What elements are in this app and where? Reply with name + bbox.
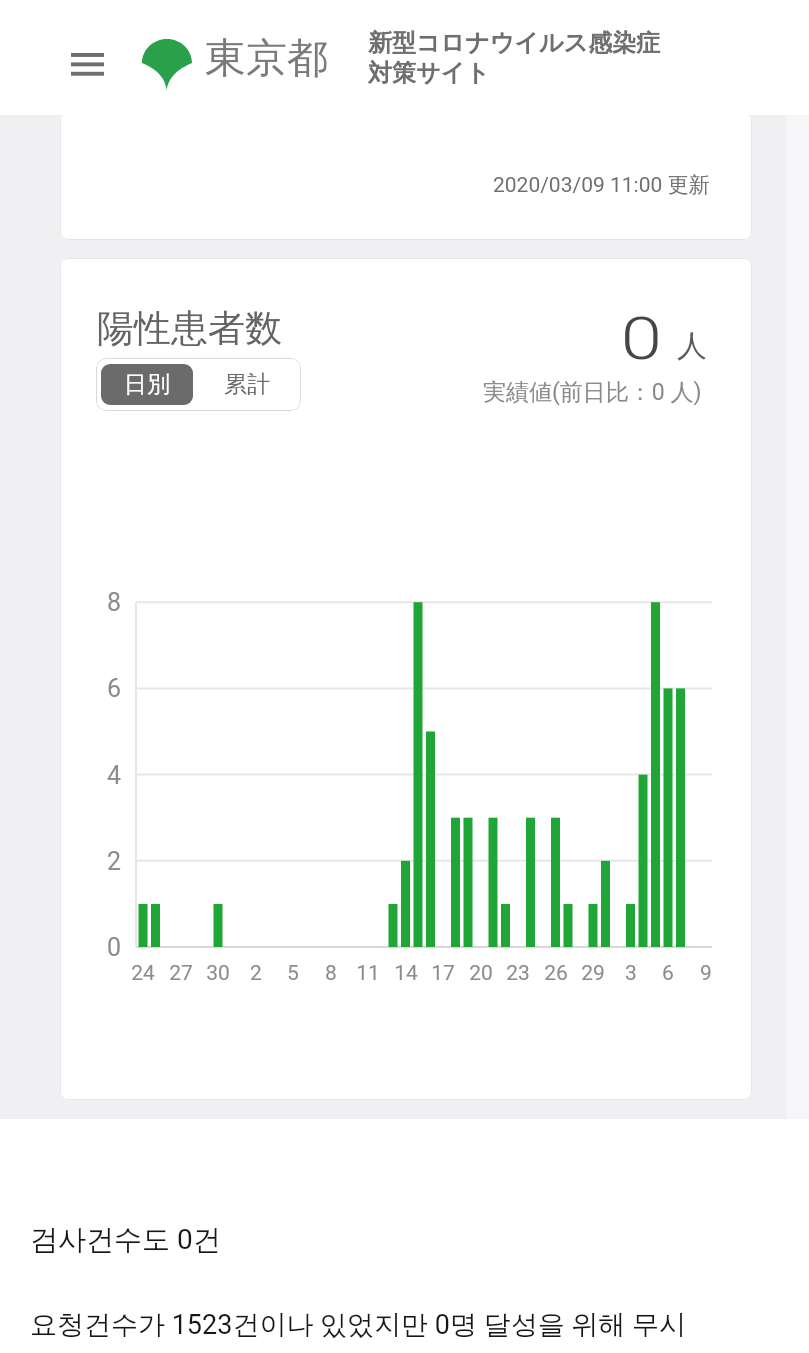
staticText: 4 (107, 761, 122, 790)
staticText: 0 (107, 933, 122, 962)
staticText: 8 (325, 961, 337, 986)
staticText: 26 (544, 961, 568, 986)
staticText: 6 (107, 674, 122, 703)
staticText: 人 (677, 327, 707, 365)
staticText: 20 (469, 961, 493, 986)
staticText: 14 (394, 961, 418, 986)
staticText: 東京都 (205, 33, 328, 85)
staticText: 対策サイト (368, 58, 490, 88)
staticText: 24 (131, 961, 155, 986)
staticText: 17 (431, 961, 455, 986)
staticText: 5 (287, 961, 299, 986)
staticText: 6 (662, 961, 674, 986)
staticText: 검사건수도 0건 (30, 1222, 221, 1257)
staticText: 8 (107, 588, 122, 617)
button[interactable]: 日別 (101, 364, 193, 405)
staticText: 日別 (124, 370, 170, 399)
button[interactable] (62, 44, 112, 84)
staticText: 0 (621, 304, 662, 373)
staticText: 2 (250, 961, 262, 986)
staticText: 9 (700, 961, 712, 986)
staticText: 実績値(前日比：0 人) (483, 378, 702, 407)
button[interactable]: 累計 (193, 358, 301, 411)
staticText: 11 (356, 961, 380, 986)
staticText: 累計 (224, 370, 270, 399)
staticText: 2020/03/09 11:00 更新 (493, 172, 710, 198)
staticText: 3 (625, 961, 637, 986)
staticText: 陽性患者数 (97, 305, 282, 352)
staticText: 新型コロナウイルス感染症 (368, 28, 660, 58)
staticText: 27 (169, 961, 193, 986)
staticText: 2 (107, 847, 122, 876)
staticText: 29 (581, 961, 605, 986)
staticText: 30 (206, 961, 230, 986)
staticText: 요청건수가 1523건이나 있었지만 0명 달성을 위해 무시 (30, 1308, 687, 1342)
staticText: 23 (506, 961, 530, 986)
